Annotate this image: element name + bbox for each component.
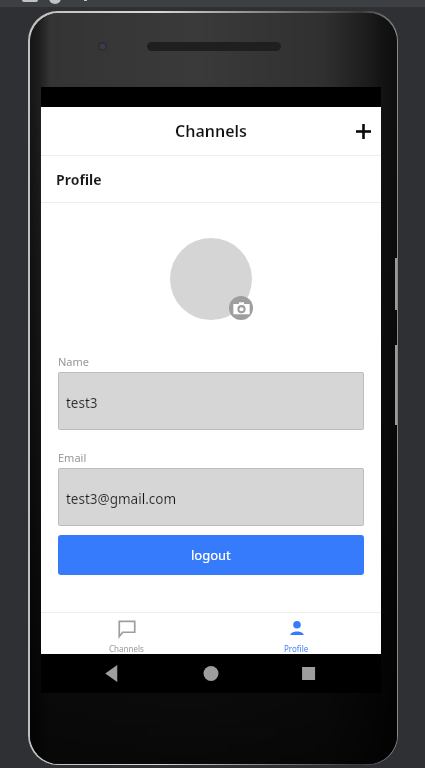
staticText: test3@gmail.com bbox=[66, 490, 177, 508]
staticText: Channels bbox=[109, 643, 144, 654]
button[interactable]: logout bbox=[58, 535, 364, 575]
staticText: Name bbox=[58, 354, 90, 369]
staticText: Email bbox=[58, 450, 87, 465]
button[interactable]: Profile bbox=[211, 613, 381, 654]
button[interactable]: Profile bbox=[41, 156, 381, 202]
staticText: test3 bbox=[66, 394, 98, 412]
button[interactable]: Add channel bbox=[341, 109, 385, 153]
button[interactable]: test3 bbox=[58, 372, 364, 430]
button[interactable]: Change profile photo bbox=[229, 296, 253, 320]
button[interactable]: test3@gmail.com bbox=[58, 468, 364, 526]
staticText: Profile bbox=[284, 643, 309, 654]
staticText: Profile bbox=[56, 170, 102, 189]
staticText: logout bbox=[191, 546, 231, 564]
staticText: Channels bbox=[175, 120, 247, 142]
button[interactable]: Channels bbox=[41, 613, 211, 654]
